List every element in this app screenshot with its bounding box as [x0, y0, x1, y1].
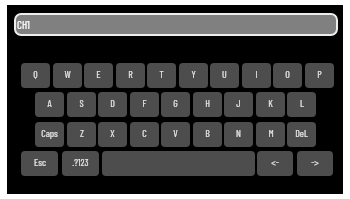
staticText: G [173, 97, 178, 109]
staticText: Q [33, 68, 38, 80]
button[interactable]: Esc [21, 151, 58, 176]
button[interactable]: N [224, 122, 253, 147]
staticText: J [236, 97, 241, 109]
button[interactable]: W [53, 63, 82, 88]
button[interactable]: Space [102, 151, 255, 176]
staticText: D [110, 97, 115, 109]
staticText: V [173, 127, 178, 139]
button[interactable]: Caps [35, 122, 64, 147]
button[interactable]: E [84, 63, 113, 88]
button[interactable]: R [116, 63, 145, 88]
staticText: Y [191, 68, 196, 80]
staticText: K [268, 97, 273, 109]
button[interactable]: .?123 [62, 151, 99, 176]
button[interactable]: H [193, 92, 222, 117]
button[interactable]: J [224, 92, 253, 117]
button[interactable]: T [147, 63, 176, 88]
staticText: P [317, 68, 322, 80]
staticText: DeL [295, 127, 308, 139]
staticText: -> [311, 156, 319, 168]
staticText: T [159, 68, 164, 80]
button[interactable]: I [242, 63, 271, 88]
staticText: F [142, 97, 147, 109]
button[interactable]: Y [179, 63, 208, 88]
staticText: U [222, 68, 227, 80]
button[interactable]: D [98, 92, 127, 117]
button[interactable]: X [98, 122, 127, 147]
button[interactable]: S [67, 92, 96, 117]
staticText: <- [271, 156, 279, 168]
button[interactable]: U [210, 63, 239, 88]
button[interactable]: A [35, 92, 64, 117]
button[interactable]: Z [67, 122, 96, 147]
staticText: B [205, 127, 210, 139]
button[interactable]: M [256, 122, 285, 147]
staticText: W [64, 68, 71, 80]
button[interactable]: G [161, 92, 190, 117]
button[interactable]: B [193, 122, 222, 147]
button[interactable]: L [287, 92, 316, 117]
button[interactable]: F [130, 92, 159, 117]
staticText: E [96, 68, 101, 80]
button[interactable]: Move cursor left [257, 151, 293, 176]
staticText: Z [80, 127, 84, 139]
staticText: I [255, 68, 258, 80]
staticText: X [110, 127, 115, 139]
staticText: N [236, 127, 241, 139]
button[interactable]: P [305, 63, 334, 88]
staticText: S [79, 97, 84, 109]
staticText: A [47, 97, 52, 109]
button[interactable]: V [161, 122, 190, 147]
staticText: L [300, 97, 304, 109]
button[interactable]: O [273, 63, 302, 88]
staticText: CH1 [17, 18, 30, 31]
button[interactable]: K [256, 92, 285, 117]
staticText: C [142, 127, 147, 139]
button[interactable]: DeL [287, 122, 316, 147]
button[interactable]: CH1 [14, 13, 338, 36]
staticText: Caps [41, 127, 58, 139]
staticText: .?123 [72, 156, 89, 168]
staticText: O [285, 68, 290, 80]
button[interactable]: Move cursor right [297, 151, 333, 176]
button[interactable]: Q [21, 63, 50, 88]
staticText: M [268, 127, 274, 139]
staticText: H [205, 97, 210, 109]
staticText: R [128, 68, 133, 80]
button[interactable]: C [130, 122, 159, 147]
staticText: Esc [34, 156, 46, 168]
